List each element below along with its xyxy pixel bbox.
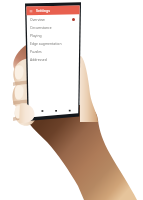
staticText: Puzzles: [30, 49, 42, 54]
staticText: Addressed: [30, 57, 47, 62]
button[interactable]: Circumstance: [27, 23, 79, 31]
button[interactable]: Overview: [27, 15, 79, 23]
staticText: Settings: [36, 8, 50, 13]
button[interactable]: Navigation menu: [27, 6, 80, 15]
other: Navigation menu: [29, 9, 33, 13]
staticText: Edge augmentation: [30, 41, 62, 46]
staticText: Overview: [30, 17, 45, 22]
staticText: Playing: [30, 33, 42, 38]
button[interactable]: Addressed: [27, 55, 79, 63]
button[interactable]: Puzzles: [27, 47, 79, 55]
button[interactable]: Edge augmentation: [27, 39, 79, 47]
staticText: Circumstance: [30, 25, 52, 30]
button[interactable]: Playing: [27, 31, 79, 39]
